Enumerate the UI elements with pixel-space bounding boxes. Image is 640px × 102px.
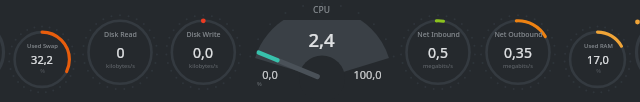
staticText: kilobytes/s [189,62,218,70]
staticText: megabits/s [423,62,453,70]
staticText: 0,5 [428,43,448,62]
staticText: Used RAM [584,42,613,50]
button[interactable] [82,12,158,92]
staticText: % [596,67,601,74]
staticText: 0,0 [193,43,213,62]
staticText: 0 [116,43,125,62]
staticText: 0,0 [262,67,278,82]
button[interactable] [400,12,476,92]
staticText: % [40,67,45,74]
staticText: CPU [313,4,330,16]
staticText: 32,2 [31,52,53,67]
button[interactable] [4,12,80,92]
staticText: Disk Read [104,30,137,40]
staticText: 100,0 [353,67,382,82]
staticText: Net Inbound [417,30,460,40]
staticText: 17,0 [587,52,609,67]
staticText: Disk Write [186,30,221,40]
button[interactable] [480,12,556,92]
staticText: kilobytes/s [106,62,135,70]
staticText: Net Outbound [494,30,543,40]
staticText: 0,35 [504,43,532,62]
button[interactable] [165,12,241,92]
button[interactable] [560,12,636,92]
staticText: % [257,80,262,88]
staticText: Used Swap [27,42,58,50]
button[interactable] [284,12,360,92]
staticText: megabits/s [503,62,533,70]
staticText: 2,4 [308,27,335,51]
